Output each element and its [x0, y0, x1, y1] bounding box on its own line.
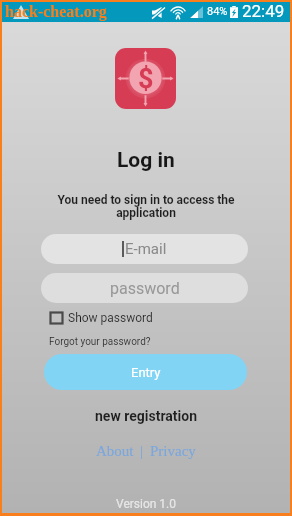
other: Sound muted: [152, 7, 165, 18]
staticText: new registration: [95, 408, 197, 424]
staticText: You need to sign in to access the applic…: [28, 193, 264, 219]
button[interactable]: new registration: [95, 408, 197, 424]
other: App logo: [115, 48, 176, 109]
staticText: hack-cheat.org: [5, 3, 107, 21]
button[interactable]: Entry: [44, 354, 247, 390]
staticText: Forgot your password?: [49, 336, 151, 348]
staticText: $: [138, 63, 154, 95]
staticText: password: [110, 279, 180, 298]
staticText: Privacy: [150, 443, 196, 460]
button[interactable]: password: [41, 273, 248, 303]
button[interactable]: Privacy: [150, 443, 196, 460]
other: Battery charging: [230, 6, 238, 18]
staticText: Entry: [131, 365, 161, 380]
staticText: 84%: [207, 5, 228, 18]
button[interactable]: Show password: [49, 311, 153, 325]
button[interactable]: About: [96, 443, 134, 460]
staticText: |: [140, 443, 144, 460]
button[interactable]: E-mail: [41, 234, 248, 264]
staticText: Version 1.0: [116, 497, 177, 511]
staticText: About: [96, 443, 134, 460]
staticText: Log in: [117, 148, 175, 173]
other: Wi-Fi: [171, 6, 185, 19]
staticText: E-mail: [125, 240, 167, 258]
other: Signal strength: [190, 6, 203, 18]
button[interactable]: Forgot your password?: [49, 336, 151, 348]
staticText: 22:49: [242, 1, 285, 21]
staticText: Show password: [68, 311, 153, 325]
